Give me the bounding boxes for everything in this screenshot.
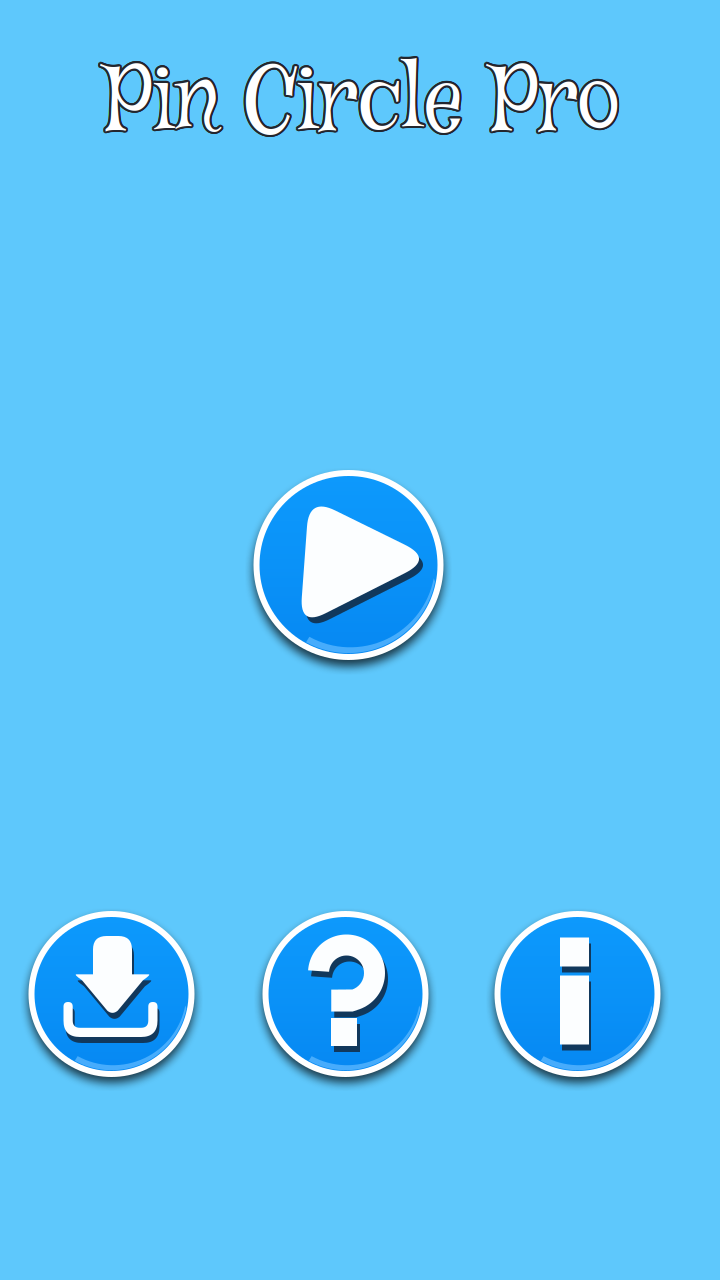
staticText: Pin Circle Pro (103, 42, 618, 162)
button[interactable]: Download (28, 911, 194, 1077)
staticText: Pin Circle Pro (104, 44, 619, 164)
staticText: Pin Circle Pro (106, 45, 621, 165)
staticText: Pin Circle Pro (103, 45, 618, 165)
staticText: Pin Circle Pro (107, 44, 622, 164)
staticText: Pin Circle Pro (104, 42, 619, 162)
staticText: Pin Circle Pro (103, 45, 618, 165)
staticText: Pin Circle Pro (104, 46, 619, 166)
staticText: Pin Circle Pro (105, 46, 620, 166)
button[interactable]: Help (262, 911, 428, 1077)
staticText: Pin Circle Pro (106, 43, 621, 163)
staticText: Pin Circle Pro (102, 44, 617, 164)
staticText: Pin Circle Pro (104, 46, 619, 166)
staticText: Pin Circle Pro (105, 42, 620, 162)
staticText: Pin Circle Pro (106, 45, 621, 165)
button[interactable]: Info (494, 911, 660, 1077)
staticText: Pin Circle Pro (106, 42, 621, 162)
staticText: Pin Circle Pro (103, 43, 618, 163)
staticText: Pin Circle Pro (104, 42, 619, 162)
button[interactable]: Play (253, 470, 443, 660)
